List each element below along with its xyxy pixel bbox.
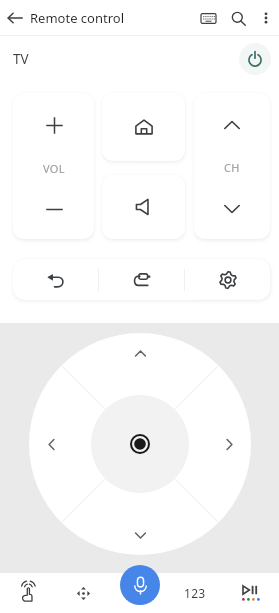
staticText: 123 — [184, 585, 206, 601]
button[interactable]: Back — [0, 3, 30, 33]
button[interactable]: Volume up — [37, 108, 71, 142]
staticText: CH — [224, 160, 240, 175]
button[interactable]: Mute — [102, 175, 185, 239]
button[interactable]: Media controls — [223, 573, 279, 613]
button[interactable]: Channel up — [215, 108, 249, 142]
button[interactable]: Voice search — [120, 565, 160, 605]
staticText: VOL — [43, 161, 65, 176]
button[interactable]: Numbers — [167, 573, 223, 613]
button[interactable]: Left — [38, 431, 64, 457]
button[interactable]: Home — [102, 93, 185, 161]
button[interactable]: Touchpad — [0, 573, 55, 613]
button[interactable]: Volume down — [37, 192, 71, 226]
button[interactable]: OK — [96, 400, 184, 488]
button[interactable]: Keyboard — [193, 3, 223, 33]
button[interactable]: Input source — [99, 259, 184, 300]
button[interactable]: More options — [253, 5, 279, 31]
button[interactable]: Search — [223, 3, 253, 33]
button[interactable]: Up — [127, 340, 153, 366]
staticText: Remote control — [30, 9, 125, 27]
button[interactable]: Settings — [185, 259, 270, 300]
button[interactable]: Down — [127, 522, 153, 548]
button[interactable]: D-pad — [55, 573, 111, 613]
button[interactable]: Power — [239, 43, 271, 75]
button[interactable]: Channel down — [215, 192, 249, 226]
button[interactable]: Back — [13, 259, 98, 300]
button[interactable]: Right — [216, 431, 242, 457]
staticText: TV — [13, 50, 29, 68]
